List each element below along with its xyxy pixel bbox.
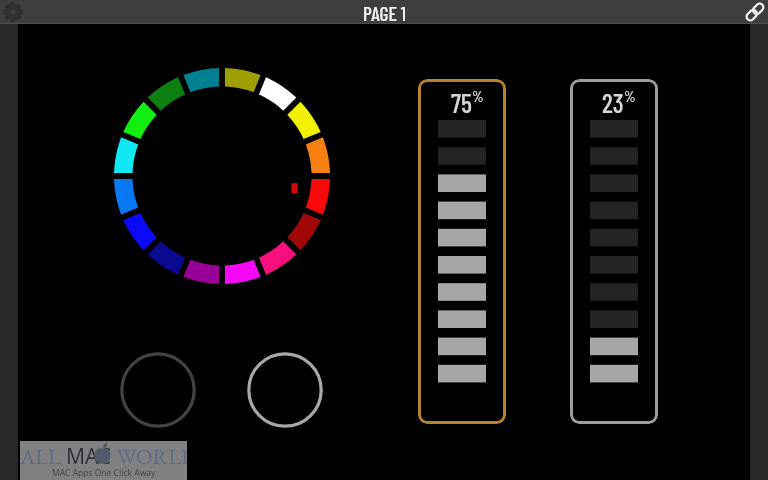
staticText: % [472,87,484,105]
staticText: PAGE 1 [363,1,406,24]
button[interactable]: 75 [418,79,506,424]
button[interactable]: Preset A [120,352,196,428]
button[interactable]: 23 [570,79,658,424]
button[interactable]: Colour wheel [110,64,334,288]
staticText: MAC Apps One Click Away [52,467,156,479]
staticText: MAC [66,442,112,471]
staticText: ALL [20,442,66,471]
staticText: 23 [602,87,624,118]
button[interactable]: Settings [1,0,25,24]
button[interactable]: Preset B [247,352,323,428]
staticText: 75 [451,87,472,118]
staticText: % [624,87,636,105]
staticText: WORLD [112,442,187,471]
button[interactable]: Link [743,0,767,24]
